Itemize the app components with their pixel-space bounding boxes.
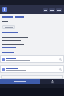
button[interactable]: [0, 55, 64, 63]
button[interactable]: [2, 16, 62, 18]
button[interactable]: [0, 65, 64, 73]
button[interactable]: Search: [43, 8, 48, 12]
button[interactable]: Filter: [49, 8, 55, 12]
button[interactable]: [2, 25, 15, 29]
button[interactable]: Upload: [40, 79, 64, 84]
button[interactable]: [0, 79, 40, 84]
button[interactable]: Open navigation menu: [2, 7, 7, 12]
button[interactable]: More options: [56, 8, 62, 12]
